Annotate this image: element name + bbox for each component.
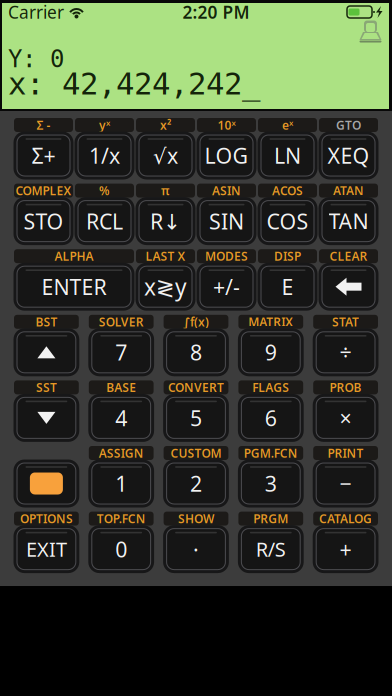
- staticText: ASIN: [212, 183, 241, 198]
- staticText: x²: [160, 117, 171, 133]
- staticText: ACOS: [272, 183, 303, 198]
- staticText: CLEAR: [329, 248, 367, 264]
- button[interactable]: LOG: [199, 134, 253, 176]
- button[interactable]: ENTER: [16, 266, 131, 308]
- button[interactable]: ×: [316, 397, 375, 439]
- staticText: LAST X: [145, 248, 185, 264]
- button[interactable]: 3: [241, 462, 301, 504]
- staticText: 6: [265, 404, 277, 432]
- staticText: 5: [190, 404, 202, 432]
- staticText: RCL: [86, 207, 123, 235]
- staticText: eˣ: [282, 117, 293, 133]
- staticText: R↓: [150, 207, 181, 235]
- staticText: BST: [35, 314, 57, 330]
- button[interactable]: Up: [16, 331, 76, 373]
- button[interactable]: COS: [260, 200, 314, 242]
- staticText: STO: [23, 207, 63, 235]
- button[interactable]: EXIT: [16, 528, 76, 570]
- staticText: 7: [115, 338, 127, 366]
- button[interactable]: Σ+: [16, 134, 70, 176]
- staticText: ASSIGN: [99, 445, 144, 461]
- staticText: R/S: [256, 536, 286, 562]
- button[interactable]: +/-: [199, 266, 253, 308]
- staticText: ATAN: [333, 183, 364, 198]
- button[interactable]: 1/x: [77, 134, 131, 176]
- staticText: FLAGS: [252, 379, 289, 395]
- staticText: 9: [265, 338, 277, 366]
- staticText: PROB: [330, 379, 362, 395]
- staticText: 0: [115, 535, 127, 563]
- button[interactable]: RCL: [77, 200, 131, 242]
- staticText: TAN: [328, 207, 368, 235]
- staticText: GTO: [336, 117, 361, 133]
- staticText: +/-: [213, 272, 240, 301]
- button[interactable]: 1: [91, 462, 151, 504]
- staticText: π: [161, 183, 170, 198]
- staticText: MODES: [205, 248, 248, 264]
- staticText: %: [99, 183, 110, 198]
- button[interactable]: Shift: [16, 462, 76, 504]
- button[interactable]: Backspace: [321, 266, 375, 308]
- staticText: COS: [266, 207, 308, 235]
- staticText: √x: [153, 141, 178, 170]
- staticText: 1: [115, 469, 127, 498]
- staticText: BASE: [106, 379, 136, 395]
- button[interactable]: E: [260, 266, 314, 308]
- staticText: TOP.FCN: [97, 511, 146, 526]
- staticText: EXIT: [26, 536, 67, 562]
- staticText: Σ+: [31, 141, 55, 170]
- staticText: Y: 0: [8, 45, 64, 73]
- staticText: ENTER: [41, 272, 106, 301]
- staticText: −: [340, 469, 352, 498]
- staticText: +: [340, 535, 352, 563]
- staticText: SST: [36, 379, 57, 395]
- staticText: 4: [115, 404, 127, 432]
- staticText: LOG: [204, 141, 248, 170]
- button[interactable]: ÷: [316, 331, 375, 373]
- button[interactable]: TAN: [321, 200, 375, 242]
- button[interactable]: R↓: [138, 200, 192, 242]
- staticText: 2:20 PM: [182, 0, 249, 23]
- staticText: SOLVER: [99, 314, 144, 330]
- staticText: x≷y: [144, 272, 187, 302]
- button[interactable]: XEQ: [321, 134, 375, 176]
- staticText: x: 42,424,242_: [8, 67, 260, 101]
- staticText: XEQ: [327, 141, 369, 170]
- button[interactable]: Down: [16, 397, 76, 439]
- button[interactable]: 0: [91, 528, 151, 570]
- button[interactable]: ·: [166, 528, 226, 570]
- staticText: ×: [340, 404, 352, 432]
- staticText: ÷: [340, 338, 352, 366]
- staticText: OPTIONS: [20, 511, 73, 526]
- staticText: DISP: [274, 248, 301, 264]
- staticText: SHOW: [178, 511, 214, 526]
- staticText: 2: [190, 469, 202, 498]
- staticText: 1/x: [89, 141, 120, 170]
- button[interactable]: √x: [138, 134, 192, 176]
- button[interactable]: STO: [16, 200, 70, 242]
- staticText: PRGM: [253, 511, 288, 526]
- staticText: PRINT: [328, 445, 364, 461]
- staticText: ∫f(x): [183, 314, 209, 330]
- button[interactable]: LN: [260, 134, 314, 176]
- button[interactable]: SIN: [199, 200, 253, 242]
- button[interactable]: 4: [91, 397, 151, 439]
- staticText: MATRIX: [248, 314, 293, 330]
- button[interactable]: 2: [166, 462, 226, 504]
- staticText: CONVERT: [168, 379, 224, 395]
- staticText: Σ -: [36, 117, 50, 133]
- button[interactable]: +: [316, 528, 375, 570]
- button[interactable]: 6: [241, 397, 301, 439]
- staticText: COMPLEX: [15, 183, 71, 198]
- button[interactable]: −: [316, 462, 375, 504]
- button[interactable]: 9: [241, 331, 301, 373]
- button[interactable]: 7: [91, 331, 151, 373]
- button[interactable]: 5: [166, 397, 226, 439]
- staticText: yˣ: [99, 117, 110, 133]
- button[interactable]: x≷y: [138, 266, 192, 308]
- staticText: 10ˣ: [217, 117, 235, 133]
- button[interactable]: R/S: [241, 528, 301, 570]
- staticText: CUSTOM: [170, 445, 221, 461]
- button[interactable]: 8: [166, 331, 226, 373]
- staticText: CATALOG: [319, 511, 372, 526]
